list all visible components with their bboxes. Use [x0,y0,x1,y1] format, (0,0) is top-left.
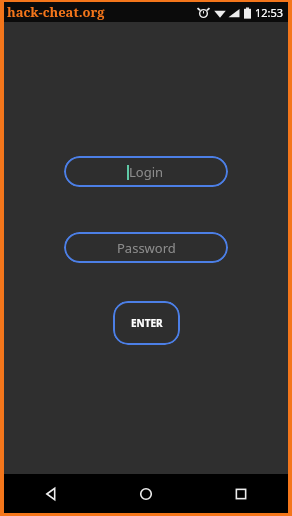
button[interactable]: Password [64,232,228,263]
staticText: Login [129,163,164,181]
staticText: 12:53 [255,5,284,20]
staticText: ENTER [131,316,163,330]
button[interactable]: ENTER [113,301,180,345]
staticText: Password [117,239,176,257]
button[interactable]: Home [98,474,193,513]
staticText: hack-cheat.org [7,3,105,21]
button[interactable]: Login [64,156,228,187]
button[interactable]: Back [4,474,98,513]
button[interactable]: Recent apps [193,474,288,513]
